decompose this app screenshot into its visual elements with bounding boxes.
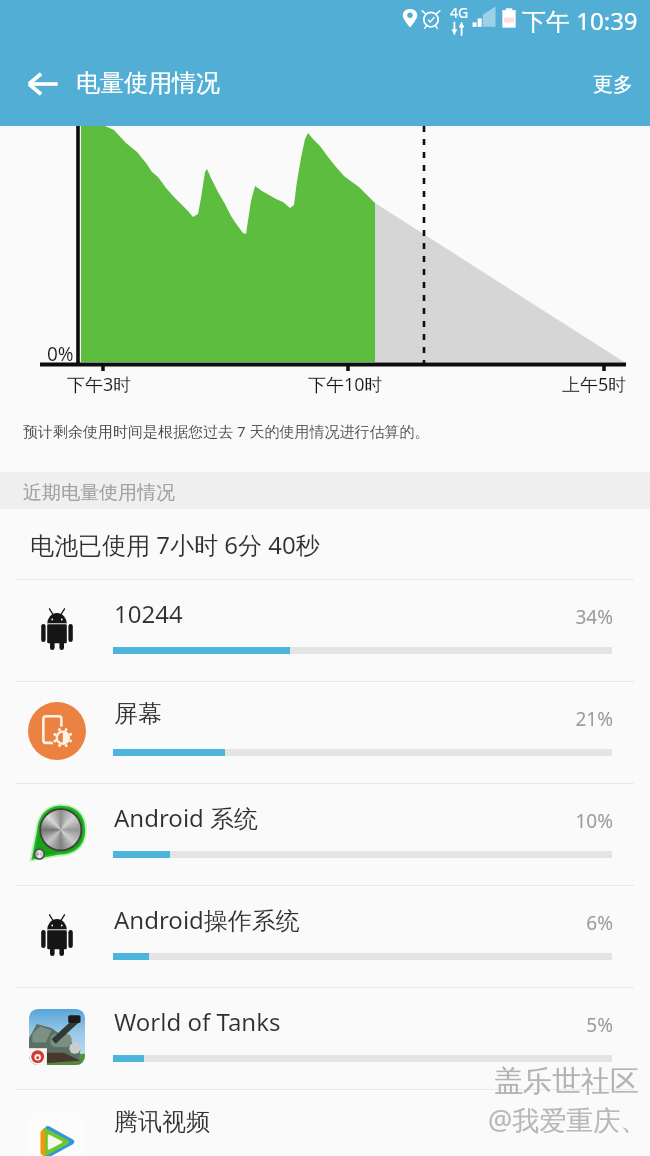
staticText: 下午 10:39 xyxy=(522,4,638,37)
staticText: 电池已使用 7小时 6分 40秒 xyxy=(30,528,320,561)
button[interactable]: 屏幕 xyxy=(0,682,650,783)
staticText: Android操作系统 xyxy=(114,903,300,936)
staticText xyxy=(540,1114,613,1140)
staticText: 预计剩余使用时间是根据您过去 7 天的使用情况进行估算的。 xyxy=(23,421,430,441)
button[interactable]: 腾讯视频 xyxy=(0,1090,650,1156)
button[interactable]: Back xyxy=(16,57,70,111)
staticText: 上午5时 xyxy=(562,372,627,397)
button[interactable]: Android操作系统 xyxy=(0,886,650,987)
staticText: Android 系统 xyxy=(114,801,259,834)
staticText: 屏幕 xyxy=(114,699,162,729)
staticText: 21% xyxy=(540,706,613,732)
button[interactable]: Android 系统 xyxy=(0,784,650,885)
staticText: 电量使用情况 xyxy=(76,68,220,98)
button[interactable]: 更多 xyxy=(571,54,650,115)
staticText: 34% xyxy=(540,604,613,630)
staticText: 盖乐世社区 xyxy=(494,1063,639,1100)
staticText: 腾讯视频 xyxy=(114,1107,210,1137)
button[interactable]: 10244 xyxy=(0,580,650,681)
staticText: 6% xyxy=(540,910,613,936)
button[interactable]: World of Tanks xyxy=(0,988,650,1089)
staticText: 下午3时 xyxy=(67,372,132,397)
staticText: 4G xyxy=(450,3,469,22)
staticText: 5% xyxy=(540,1012,613,1038)
staticText: 近期电量使用情况 xyxy=(23,481,175,505)
staticText: 更多 xyxy=(593,72,633,97)
staticText: 0% xyxy=(47,341,74,367)
staticText: 下午10时 xyxy=(308,372,383,397)
staticText: 10% xyxy=(540,808,613,834)
staticText: 10244 xyxy=(114,597,183,630)
staticText: World of Tanks xyxy=(114,1005,281,1038)
staticText: @我爱重庆、 xyxy=(488,1101,648,1138)
